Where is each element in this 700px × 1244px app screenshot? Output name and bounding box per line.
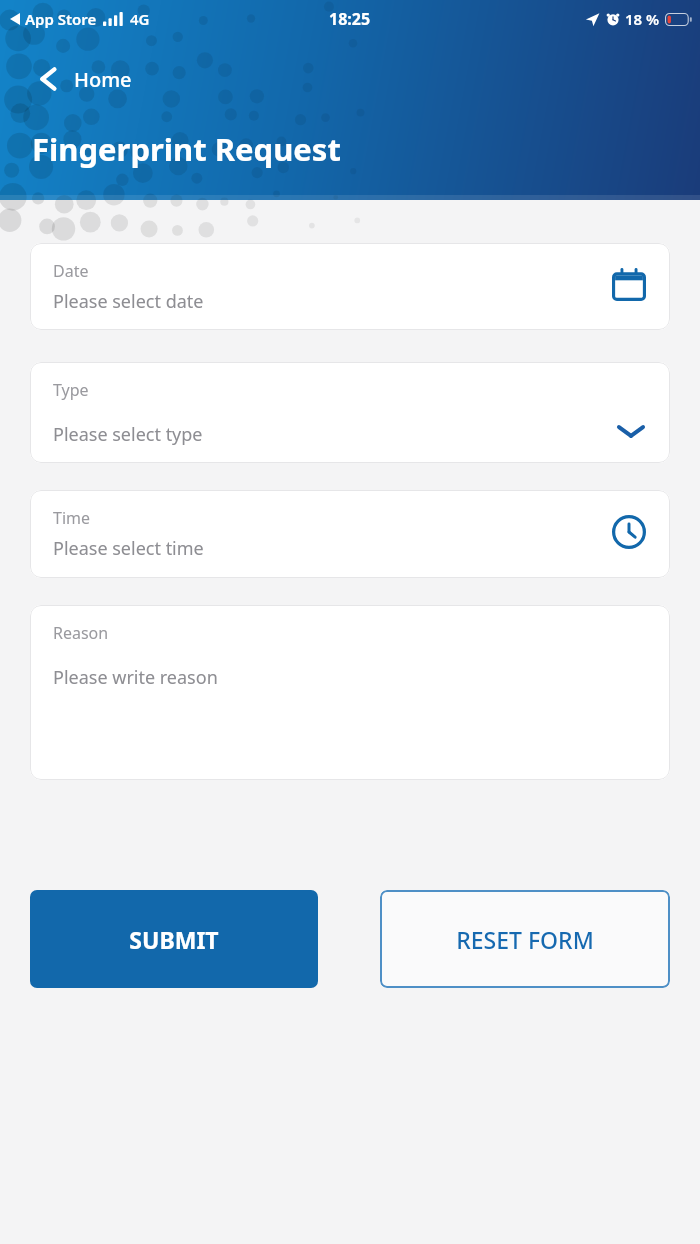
staticText: App Store [25,9,97,29]
staticText: Please select time [53,536,204,561]
staticText: 18:25 [329,8,371,30]
staticText: Please select date [53,289,204,314]
button[interactable]: Reason [30,605,670,780]
staticText: Fingerprint Request [32,128,341,170]
staticText: Date [53,260,89,282]
button[interactable]: Select time [608,511,650,553]
staticText: SUBMIT [129,924,219,955]
staticText: 18 % [625,9,660,29]
button[interactable]: Type [30,362,670,463]
staticText: Home [74,66,132,93]
button[interactable]: Select date [608,264,650,305]
button[interactable]: Date [30,243,670,330]
staticText: 4G [130,9,150,29]
staticText: Reason [53,622,109,644]
staticText: Time [53,507,91,529]
staticText: Please write reason [53,665,218,690]
button[interactable]: SUBMIT [30,890,318,988]
staticText: Type [53,379,89,401]
button[interactable]: Time [30,490,670,578]
staticText: RESET FORM [456,924,594,955]
button[interactable]: Select type [612,416,650,446]
button[interactable]: RESET FORM [380,890,670,988]
staticText: Please select type [53,422,203,447]
button[interactable]: Home [30,58,140,100]
